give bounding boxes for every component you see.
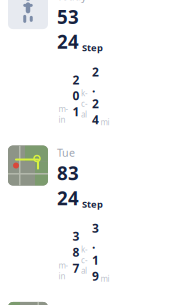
staticText: 387 [72,228,79,276]
button[interactable]: Mon [0,297,172,305]
button[interactable]: Tue [0,140,172,297]
staticText: min [58,260,68,292]
staticText: Step [82,198,103,210]
staticText: Today [57,0,86,3]
staticText: mi [100,273,109,284]
staticText: 201 [72,72,79,120]
button[interactable]: Today [0,0,172,140]
staticText: 8324 [57,161,79,210]
staticText: Step [82,41,103,54]
staticText: kcal [81,244,88,276]
staticText: 2.24 [92,64,99,127]
staticText: 5324 [57,4,79,54]
staticText: 3.19 [92,220,99,284]
staticText: mi [100,117,109,127]
staticText: min [58,104,68,136]
staticText: kcal [81,88,88,120]
staticText: Tue [57,145,75,160]
